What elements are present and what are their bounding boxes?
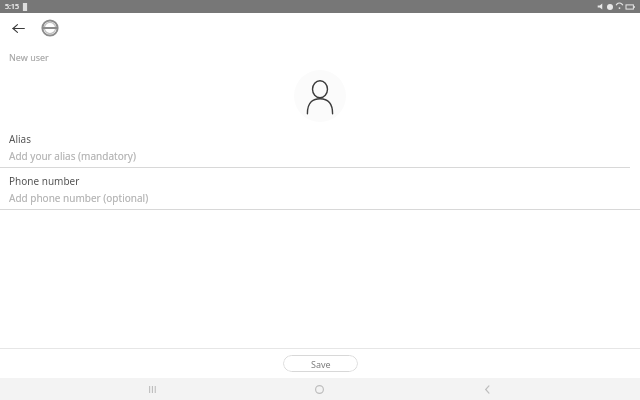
staticText: Phone number <box>9 174 80 188</box>
staticText: Add your alias (mandatory) <box>9 149 136 163</box>
staticText: Save <box>311 358 331 370</box>
staticText: New user <box>9 51 49 63</box>
button[interactable]: Phone number <box>0 174 640 210</box>
button[interactable]: Recents <box>137 378 167 400</box>
button[interactable]: Back <box>472 378 502 400</box>
button[interactable]: Logo <box>38 16 62 40</box>
staticText: Add phone number (optional) <box>9 191 149 205</box>
staticText: 5:15 <box>5 2 19 12</box>
button[interactable]: Profile picture <box>294 70 346 122</box>
button[interactable]: Save <box>283 355 358 372</box>
staticText: Alias <box>9 132 31 146</box>
button[interactable]: Home <box>304 378 334 400</box>
button[interactable]: Back <box>4 14 32 42</box>
button[interactable]: Alias <box>0 132 640 168</box>
